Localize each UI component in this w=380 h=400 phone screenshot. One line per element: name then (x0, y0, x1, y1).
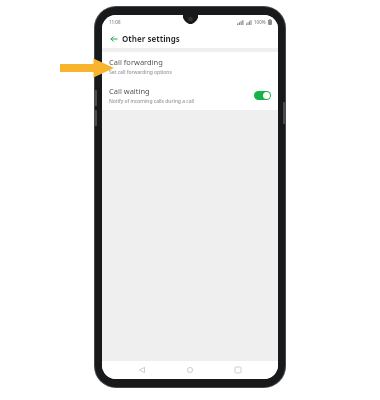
button[interactable]: Recent apps (230, 362, 246, 378)
button[interactable]: Home (182, 362, 198, 378)
button[interactable]: Call forwarding (102, 52, 278, 81)
staticText: 100% (254, 19, 266, 25)
button[interactable]: Call waiting (102, 81, 278, 110)
button[interactable]: Back (134, 362, 150, 378)
staticText: Call waiting (109, 86, 150, 96)
staticText: Call forwarding (109, 57, 163, 67)
staticText: 11:08 (109, 19, 121, 25)
button[interactable]: Call waiting toggle (254, 91, 271, 100)
staticText: Set call forwarding options (109, 69, 172, 76)
button[interactable]: Back (107, 32, 120, 45)
staticText: Notify of incoming calls during a call (109, 98, 195, 105)
staticText: Other settings (122, 33, 180, 44)
